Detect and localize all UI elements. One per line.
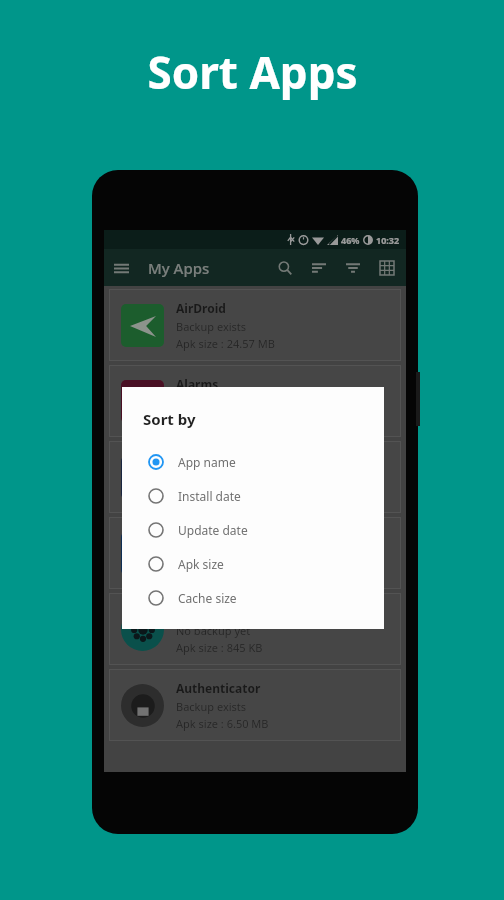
staticText: Install date bbox=[178, 488, 241, 504]
button[interactable]: Update date bbox=[122, 513, 384, 547]
button[interactable]: Android Auto bbox=[109, 441, 401, 513]
button[interactable]: Search bbox=[268, 251, 302, 285]
button[interactable]: Authenticator bbox=[109, 669, 401, 741]
staticText: My Apps bbox=[148, 258, 210, 278]
button[interactable]: Apk size bbox=[122, 547, 384, 581]
button[interactable]: Install date bbox=[122, 479, 384, 513]
staticText: Android Pay bbox=[176, 528, 249, 544]
button[interactable]: Menu bbox=[104, 251, 138, 285]
staticText: Cache size bbox=[178, 590, 237, 606]
staticText: Apk size : 28.94 MB bbox=[176, 564, 275, 579]
button[interactable]: Alarms bbox=[109, 365, 401, 437]
staticText: AirDroid bbox=[176, 300, 226, 316]
button[interactable]: Grid view bbox=[370, 251, 404, 285]
staticText: App name bbox=[178, 454, 236, 470]
staticText: 46% bbox=[341, 234, 360, 246]
button[interactable]: Cache size bbox=[122, 581, 384, 615]
staticText: Sort by bbox=[143, 409, 196, 429]
staticText: Apk size : 845 KB bbox=[176, 640, 263, 655]
button[interactable]: Filter bbox=[336, 251, 370, 285]
staticText: Backup exists bbox=[176, 699, 247, 714]
staticText: Android Auto bbox=[176, 452, 256, 468]
staticText: Apk size : 3.21 MB bbox=[176, 412, 269, 427]
staticText: Backup exists bbox=[176, 547, 247, 562]
staticText: Apk size : 12.10 MB bbox=[176, 488, 275, 503]
staticText: Authenticator bbox=[176, 680, 261, 696]
button[interactable]: App Manager bbox=[109, 593, 401, 665]
staticText: Apk size bbox=[178, 556, 224, 572]
staticText: Backup exists bbox=[176, 319, 247, 334]
staticText: No backup yet bbox=[176, 623, 251, 638]
button[interactable]: Android Pay bbox=[109, 517, 401, 589]
staticText: Apk size : 24.57 MB bbox=[176, 336, 275, 351]
staticText: 10:32 bbox=[376, 234, 400, 246]
button[interactable]: AirDroid bbox=[109, 289, 401, 361]
staticText: Sort Apps bbox=[147, 42, 358, 102]
button[interactable]: App name bbox=[122, 445, 384, 479]
staticText: Apk size : 6.50 MB bbox=[176, 716, 269, 731]
staticText: Alarms bbox=[176, 376, 219, 392]
staticText: Update date bbox=[178, 522, 248, 538]
button[interactable]: Sort bbox=[302, 251, 336, 285]
